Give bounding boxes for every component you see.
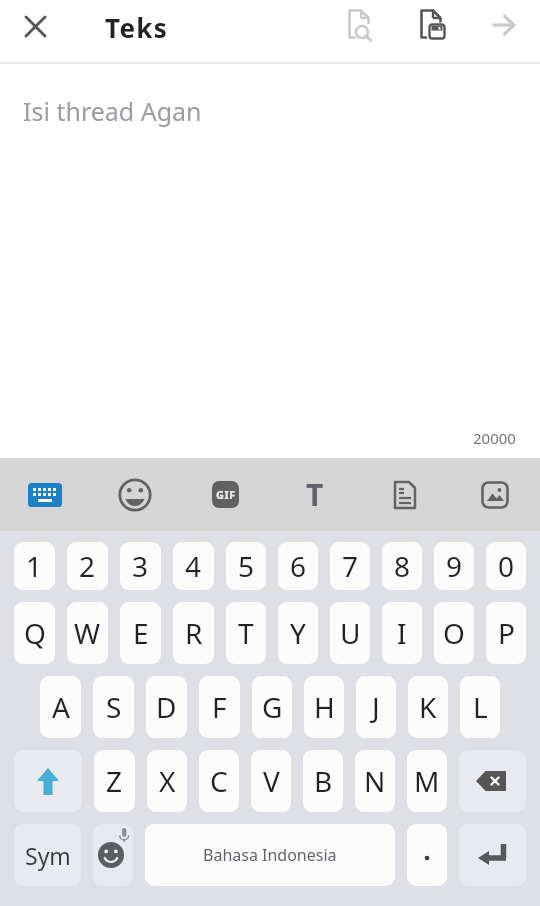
staticText: R: [185, 614, 203, 652]
staticText: F: [212, 688, 227, 726]
button[interactable]: [459, 750, 526, 812]
staticText: 4: [185, 547, 202, 585]
button[interactable]: 1: [14, 542, 55, 590]
staticText: 0: [498, 547, 515, 585]
staticText: 20000: [473, 428, 516, 448]
button[interactable]: G: [252, 676, 292, 738]
staticText: 6: [290, 547, 307, 585]
staticText: K: [419, 688, 437, 726]
staticText: 2: [79, 547, 96, 585]
button[interactable]: [14, 750, 82, 812]
staticText: O: [443, 614, 465, 652]
button[interactable]: P: [486, 602, 526, 664]
staticText: J: [372, 688, 380, 726]
button[interactable]: 5: [226, 542, 266, 590]
button[interactable]: [450, 458, 540, 531]
button[interactable]: 9: [434, 542, 474, 590]
staticText: S: [106, 688, 122, 726]
staticText: 5: [238, 547, 255, 585]
staticText: D: [156, 688, 177, 726]
staticText: 8: [394, 547, 411, 585]
staticText: T: [238, 614, 254, 652]
staticText: L: [473, 688, 488, 726]
staticText: 3: [132, 547, 149, 585]
button[interactable]: [13, 4, 57, 48]
button[interactable]: [324, 0, 396, 50]
staticText: A: [52, 688, 70, 726]
button[interactable]: 8: [382, 542, 422, 590]
button[interactable]: Q: [14, 602, 55, 664]
button[interactable]: R: [173, 602, 214, 664]
staticText: T: [306, 474, 324, 515]
button[interactable]: A: [40, 676, 81, 738]
staticText: Teks: [105, 10, 169, 45]
button[interactable]: 2: [67, 542, 108, 590]
button[interactable]: Sym: [14, 824, 81, 886]
staticText: G: [262, 688, 283, 726]
button[interactable]: B: [303, 750, 343, 812]
button[interactable]: [459, 824, 526, 886]
button[interactable]: [93, 824, 133, 886]
staticText: N: [364, 762, 386, 800]
staticText: P: [498, 614, 515, 652]
button[interactable]: L: [460, 676, 500, 738]
button[interactable]: [396, 0, 468, 50]
button[interactable]: 4: [173, 542, 214, 590]
button[interactable]: W: [67, 602, 108, 664]
staticText: W: [74, 614, 101, 652]
button[interactable]: GIF: [180, 458, 270, 531]
button[interactable]: Y: [278, 602, 318, 664]
button[interactable]: K: [408, 676, 448, 738]
button[interactable]: 6: [278, 542, 318, 590]
button[interactable]: V: [251, 750, 291, 812]
button[interactable]: 3: [120, 542, 161, 590]
button[interactable]: N: [355, 750, 395, 812]
button[interactable]: [0, 458, 90, 531]
staticText: 1: [26, 547, 43, 585]
button[interactable]: E: [120, 602, 161, 664]
button[interactable]: X: [147, 750, 187, 812]
button[interactable]: J: [356, 676, 396, 738]
button[interactable]: [90, 458, 180, 531]
staticText: Q: [24, 614, 46, 652]
staticText: H: [314, 688, 335, 726]
staticText: GIF: [216, 487, 236, 502]
staticText: M: [414, 762, 440, 800]
button[interactable]: [407, 824, 447, 886]
button[interactable]: Z: [94, 750, 135, 812]
button[interactable]: T: [226, 602, 266, 664]
button[interactable]: F: [199, 676, 240, 738]
staticText: Sym: [25, 840, 71, 871]
staticText: U: [340, 614, 361, 652]
staticText: X: [159, 762, 176, 800]
button[interactable]: 0: [486, 542, 526, 590]
button[interactable]: I: [382, 602, 422, 664]
staticText: Isi thread Agan: [23, 94, 202, 128]
button[interactable]: U: [330, 602, 370, 664]
button[interactable]: S: [93, 676, 134, 738]
staticText: V: [263, 762, 280, 800]
button[interactable]: O: [434, 602, 474, 664]
button[interactable]: [468, 0, 540, 50]
button[interactable]: [360, 458, 450, 531]
staticText: Bahasa Indonesia: [203, 844, 337, 866]
button[interactable]: C: [199, 750, 239, 812]
staticText: Z: [106, 762, 123, 800]
button[interactable]: M: [407, 750, 447, 812]
staticText: I: [397, 614, 407, 652]
staticText: B: [314, 762, 333, 800]
staticText: 9: [446, 547, 463, 585]
staticText: C: [210, 762, 228, 800]
button[interactable]: H: [304, 676, 344, 738]
button[interactable]: D: [146, 676, 187, 738]
staticText: Y: [290, 614, 306, 652]
staticText: E: [133, 614, 149, 652]
button[interactable]: 7: [330, 542, 370, 590]
staticText: 7: [342, 547, 359, 585]
button[interactable]: T: [270, 458, 360, 531]
button[interactable]: Bahasa Indonesia: [145, 824, 395, 886]
